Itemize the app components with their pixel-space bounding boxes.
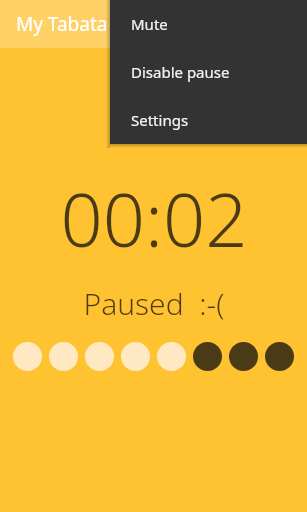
- staticText: Paused :-(: [83, 283, 225, 324]
- button[interactable]: Round 3: [85, 342, 114, 371]
- button[interactable]: Settings: [110, 95, 307, 144]
- button[interactable]: Round 6: [193, 342, 222, 371]
- button[interactable]: Round 1: [13, 342, 42, 371]
- staticText: Settings: [131, 110, 189, 130]
- button[interactable]: Round 2: [49, 342, 78, 371]
- staticText: My Tabata: [16, 11, 108, 37]
- button[interactable]: Round 7: [229, 342, 258, 371]
- button[interactable]: Round 4: [121, 342, 150, 371]
- staticText: Mute: [131, 14, 168, 34]
- staticText: 00:02: [60, 168, 248, 269]
- button[interactable]: Disable pause: [110, 48, 307, 95]
- button[interactable]: Round 5: [157, 342, 186, 371]
- button[interactable]: Mute: [110, 0, 307, 48]
- staticText: Disable pause: [131, 62, 230, 82]
- button[interactable]: Round 8: [265, 342, 294, 371]
